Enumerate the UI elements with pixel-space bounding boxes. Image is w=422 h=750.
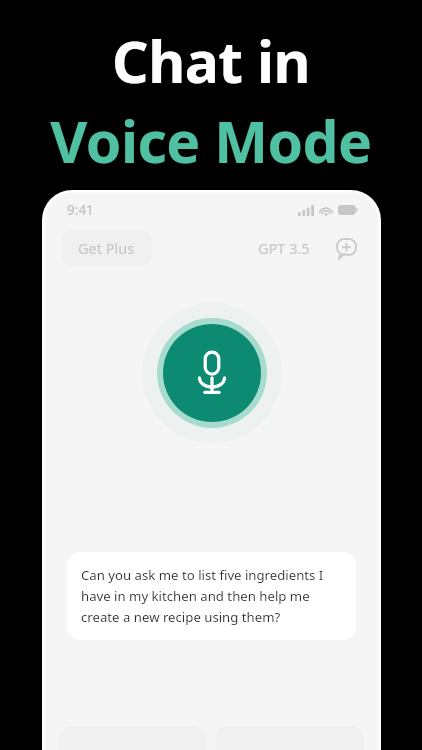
button[interactable]: Get Plus xyxy=(61,231,152,265)
staticText: GPT 3.5 xyxy=(258,238,310,258)
staticText: 9:41 xyxy=(67,201,94,219)
button[interactable]: GPT 3.5 xyxy=(254,234,314,262)
staticText: Voice Mode xyxy=(50,102,372,180)
staticText: Chat in xyxy=(112,22,310,100)
staticText: Get Plus xyxy=(78,238,135,258)
button[interactable]: New chat xyxy=(332,234,360,262)
staticText: Can you ask me to list five ingredients … xyxy=(81,566,342,626)
button[interactable]: Voice input xyxy=(142,303,282,443)
button[interactable]: Can you ask me to list five ingredients … xyxy=(67,552,356,640)
